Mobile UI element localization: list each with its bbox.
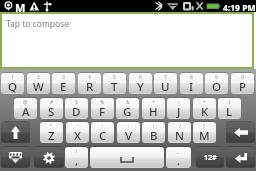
staticText: J — [177, 104, 181, 119]
staticText: 4:19 PM — [223, 2, 256, 14]
button[interactable]: & — [116, 98, 139, 119]
staticText: ? — [203, 123, 206, 130]
button[interactable]: 0 — [231, 73, 254, 94]
button[interactable]: ; — [142, 122, 165, 143]
button[interactable]: / — [168, 122, 191, 143]
staticText: V — [125, 128, 133, 143]
button[interactable]: Hide keyboard — [1, 147, 30, 168]
button[interactable]: ? — [193, 122, 216, 143]
staticText: X — [74, 128, 82, 143]
staticText: N — [175, 128, 184, 143]
button[interactable]: Enter — [226, 147, 255, 168]
staticText: S — [48, 104, 55, 119]
staticText: B — [150, 128, 158, 143]
staticText: 3 — [62, 74, 65, 81]
staticText: G — [123, 104, 132, 119]
staticText: / — [179, 123, 181, 130]
staticText: " — [50, 123, 53, 130]
button[interactable]: " — [40, 122, 63, 143]
staticText: * — [152, 99, 155, 106]
staticText: 8 — [190, 74, 193, 81]
staticText: 6 — [139, 74, 142, 81]
button[interactable]: * — [142, 98, 165, 119]
staticText: : — [128, 123, 130, 130]
button[interactable]: 8 — [180, 73, 203, 94]
staticText: _ — [177, 148, 180, 155]
staticText: M — [15, 0, 26, 12]
button[interactable]: 1 — [1, 73, 24, 94]
button[interactable]: 7 — [154, 73, 177, 94]
staticText: 1 — [11, 74, 14, 81]
button[interactable]: Tap to compose — [2, 14, 252, 67]
button[interactable]: 5 — [103, 73, 126, 94]
staticText: 0 — [241, 74, 244, 81]
staticText: Q — [8, 79, 18, 94]
staticText: Y — [137, 79, 144, 94]
button[interactable]: 2 — [27, 73, 50, 94]
staticText: 7 — [164, 74, 167, 81]
staticText: % — [100, 99, 105, 106]
button[interactable]: $ — [65, 98, 88, 119]
staticText: H — [149, 104, 158, 119]
staticText: ‘ — [77, 123, 78, 130]
staticText: - — [178, 99, 180, 106]
button[interactable]: Symbols — [196, 147, 224, 168]
staticText: & — [126, 99, 130, 106]
staticText: + — [203, 99, 206, 106]
staticText: 2 — [37, 74, 40, 81]
staticText: , — [75, 153, 79, 168]
staticText: 4 — [88, 74, 91, 81]
staticText: ( — [229, 99, 231, 106]
button[interactable] — [90, 147, 164, 168]
staticText: E — [60, 79, 67, 94]
staticText: . — [177, 153, 181, 168]
staticText: U — [161, 79, 170, 94]
staticText: # — [50, 99, 54, 106]
staticText: 9 — [215, 74, 218, 81]
button[interactable]: : — [117, 122, 140, 143]
button[interactable]: 4 — [78, 73, 101, 94]
button[interactable]: @ — [14, 98, 37, 119]
staticText: ! — [76, 148, 78, 155]
button[interactable]: 6 — [129, 73, 152, 94]
staticText: 12# — [204, 153, 217, 163]
staticText: W — [33, 79, 44, 94]
button[interactable]: 3 — [52, 73, 75, 94]
staticText: P — [239, 79, 247, 94]
button[interactable]: # — [40, 98, 63, 119]
staticText: Tap to compose — [6, 18, 70, 30]
staticText: I — [189, 79, 194, 94]
staticText: O — [212, 79, 222, 94]
staticText: $ — [75, 99, 78, 106]
staticText: 5 — [113, 74, 116, 81]
button[interactable]: ’ — [91, 122, 114, 143]
staticText: ’ — [102, 123, 103, 130]
button[interactable]: 9 — [205, 73, 228, 94]
staticText: K — [201, 104, 209, 119]
button[interactable]: ! — [65, 147, 88, 168]
staticText: L — [226, 104, 233, 119]
staticText: @ — [23, 99, 28, 106]
button[interactable]: + — [193, 98, 216, 119]
staticText: ; — [153, 123, 155, 130]
staticText: T — [111, 79, 118, 94]
staticText: R — [86, 79, 94, 94]
button[interactable]: % — [91, 98, 114, 119]
staticText: D — [72, 104, 81, 119]
button[interactable]: ( — [218, 98, 241, 119]
button[interactable]: ‘ — [66, 122, 89, 143]
button[interactable]: Backspace — [226, 122, 255, 143]
staticText: M — [199, 128, 210, 143]
button[interactable]: - — [167, 98, 190, 119]
button[interactable]: _ — [166, 147, 191, 168]
button[interactable]: Settings — [34, 147, 64, 168]
staticText: A — [22, 104, 30, 119]
staticText: Z — [48, 128, 55, 143]
staticText: F — [99, 104, 106, 119]
button[interactable]: Shift — [1, 122, 30, 143]
staticText: C — [99, 128, 107, 143]
